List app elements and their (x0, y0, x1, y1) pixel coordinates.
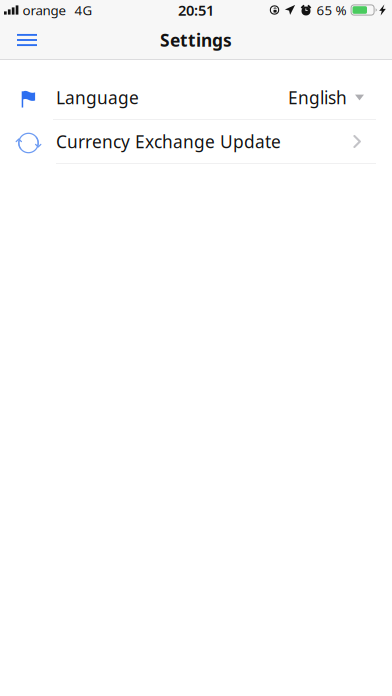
staticText: 20:51 (178, 0, 214, 20)
button[interactable]: Currency Exchange Update (0, 120, 392, 164)
button[interactable]: Menu (0, 20, 48, 60)
button[interactable]: Language (0, 76, 392, 120)
staticText: 4G (74, 1, 92, 19)
staticText: orange (22, 1, 66, 19)
staticText: Settings (160, 28, 232, 51)
staticText: English (288, 86, 347, 109)
staticText: Language (56, 86, 139, 109)
staticText: 65 % (316, 1, 346, 19)
staticText: Currency Exchange Update (56, 130, 281, 153)
